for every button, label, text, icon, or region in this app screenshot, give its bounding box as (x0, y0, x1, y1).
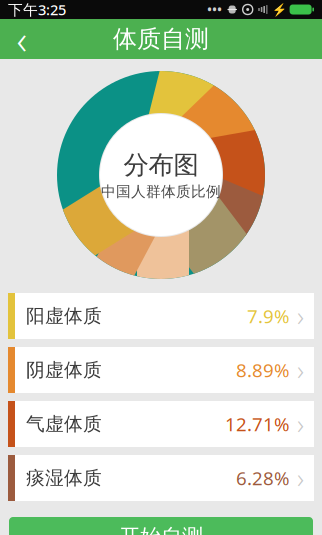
staticText: 开始自测 (119, 524, 203, 535)
staticText: 12.71% (225, 412, 290, 436)
staticText: 体质自测 (113, 24, 209, 54)
staticText: 痰湿体质 (26, 466, 102, 489)
staticText: 下午3:25 (8, 0, 66, 19)
staticText: › (297, 352, 304, 388)
button[interactable]: 痰湿体质 (8, 455, 314, 501)
staticText: ⚡ (272, 3, 287, 16)
staticText: 分布图 (123, 149, 198, 180)
staticText: › (297, 406, 304, 442)
staticText: 6.28% (236, 466, 290, 490)
staticText: 7.9% (247, 304, 290, 328)
button[interactable]: Back (0, 19, 44, 59)
staticText: 气虚体质 (26, 412, 102, 435)
button[interactable]: 气虚体质 (8, 401, 314, 447)
button[interactable]: 开始自测 (9, 517, 313, 535)
staticText: 阳虚体质 (26, 304, 102, 327)
staticText: 8.89% (236, 358, 290, 382)
staticText: › (297, 460, 304, 496)
button[interactable]: 阴虚体质 (8, 347, 314, 393)
staticText: 阴虚体质 (26, 358, 102, 381)
staticText: › (297, 298, 304, 334)
staticText: ‹ (16, 12, 27, 65)
staticText: 中国人群体质比例 (101, 183, 221, 201)
button[interactable]: 阳虚体质 (8, 293, 314, 339)
staticText: ••• (207, 1, 222, 17)
